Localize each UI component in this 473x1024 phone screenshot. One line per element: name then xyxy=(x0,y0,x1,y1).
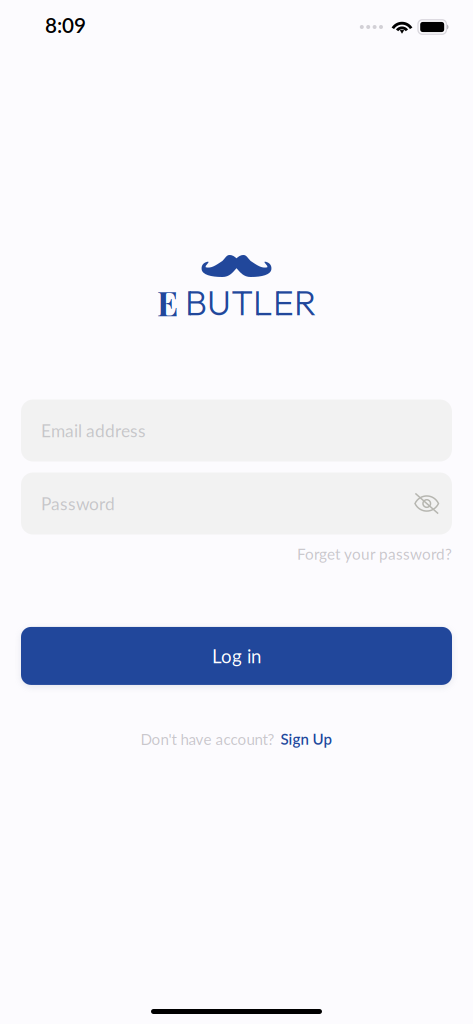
staticText: E xyxy=(157,280,178,324)
staticText: BUTLER xyxy=(185,280,316,324)
staticText: Log in xyxy=(212,645,261,667)
staticText: Forget your password? xyxy=(297,544,452,563)
staticText: 8:09 xyxy=(45,13,86,37)
staticText: Email address xyxy=(41,420,146,441)
button[interactable]: Show password xyxy=(414,493,439,514)
button[interactable]: Log in xyxy=(21,627,452,685)
staticText: Password xyxy=(41,493,115,514)
button[interactable]: Sign Up xyxy=(280,730,332,748)
staticText: Sign Up xyxy=(280,730,332,748)
staticText: Don't have account? xyxy=(140,730,274,748)
button[interactable]: Forget your password? xyxy=(297,544,452,563)
